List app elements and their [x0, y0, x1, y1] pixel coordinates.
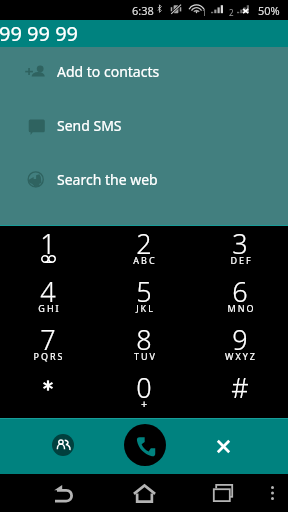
button[interactable]	[0, 370, 96, 418]
staticText: MNO	[227, 302, 256, 314]
staticText: 2	[229, 7, 234, 18]
staticText: ABC	[133, 254, 157, 266]
button[interactable]: 9	[192, 322, 288, 370]
button[interactable]: 0	[96, 370, 192, 418]
staticText: 3	[232, 225, 248, 262]
staticText: 5	[136, 273, 152, 310]
button[interactable]: 1	[0, 226, 96, 274]
staticText: 0	[136, 369, 152, 406]
button[interactable]: Recent apps	[199, 474, 247, 512]
staticText: PQRS	[33, 350, 65, 362]
staticText: JKL	[136, 302, 155, 314]
button[interactable]: Search the web	[0, 152, 288, 206]
button[interactable]: Clear	[203, 426, 243, 466]
staticText: GHI	[38, 302, 61, 314]
button[interactable]: Add to contacts	[0, 44, 288, 98]
button[interactable]: 2	[96, 226, 192, 274]
staticText: 6:38	[132, 3, 154, 18]
button[interactable]: Contacts	[43, 425, 83, 465]
button[interactable]: 3	[192, 226, 288, 274]
staticText: 50%	[258, 3, 280, 18]
staticText: Add to contacts	[57, 62, 160, 81]
button[interactable]: Call	[124, 424, 166, 466]
staticText: 1	[202, 7, 207, 18]
button[interactable]: Home	[120, 474, 168, 512]
staticText: Search the web	[57, 170, 158, 189]
staticText: 8	[136, 321, 152, 358]
staticText: #	[231, 369, 249, 406]
button[interactable]: 7	[0, 322, 96, 370]
button[interactable]: 8	[96, 322, 192, 370]
button[interactable]: 5	[96, 274, 192, 322]
button[interactable]: More options	[256, 474, 288, 512]
button[interactable]: 6	[192, 274, 288, 322]
staticText: 9	[232, 321, 248, 358]
staticText: TUV	[134, 350, 157, 362]
button[interactable]: Back	[39, 474, 87, 512]
staticText: 6	[232, 273, 248, 310]
staticText: +	[141, 396, 148, 411]
button[interactable]: #	[192, 370, 288, 418]
staticText: 1	[40, 225, 56, 262]
staticText: 2	[136, 225, 152, 262]
staticText: 4	[40, 273, 56, 310]
button[interactable]: Send SMS	[0, 98, 288, 152]
staticText: WXYZ	[225, 350, 257, 362]
staticText: DEF	[230, 254, 253, 266]
staticText: 99 99 99	[0, 20, 79, 47]
staticText: Send SMS	[57, 116, 122, 135]
staticText: 7	[40, 321, 56, 358]
button[interactable]: 4	[0, 274, 96, 322]
